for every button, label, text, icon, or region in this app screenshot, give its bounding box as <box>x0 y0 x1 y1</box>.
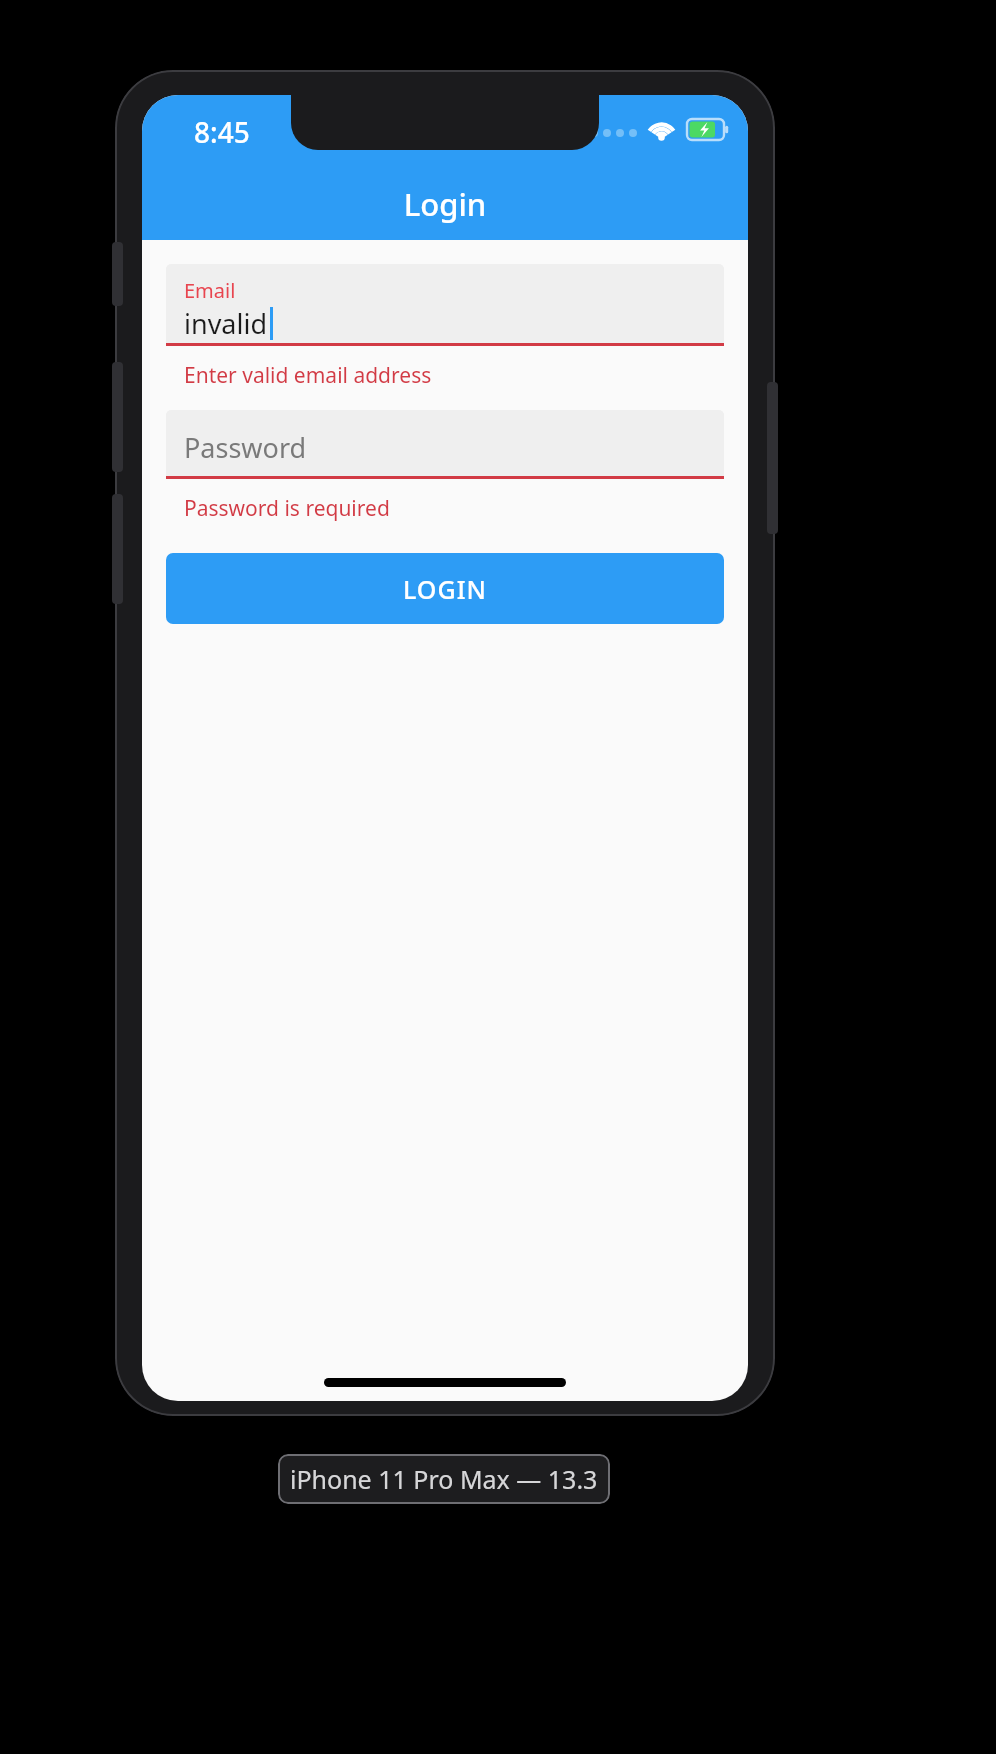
staticText: Password is required <box>184 494 390 523</box>
staticText: Enter valid email address <box>184 361 432 390</box>
staticText: LOGIN <box>403 572 487 606</box>
staticText: iPhone 11 Pro Max — 13.3 <box>290 1462 598 1496</box>
button[interactable]: LOGIN <box>166 553 724 624</box>
staticText: 8:45 <box>194 113 250 151</box>
other: Battery charging <box>687 119 728 140</box>
staticText: invalid <box>184 305 268 342</box>
other: Wi-Fi signal <box>646 117 677 141</box>
staticText: Password <box>184 429 307 466</box>
staticText: Login <box>142 183 748 225</box>
button[interactable]: Password <box>166 410 724 479</box>
button[interactable]: iPhone 11 Pro Max — 13.3 <box>278 1454 610 1504</box>
staticText: Email <box>184 277 236 304</box>
button[interactable]: Email <box>166 264 724 346</box>
